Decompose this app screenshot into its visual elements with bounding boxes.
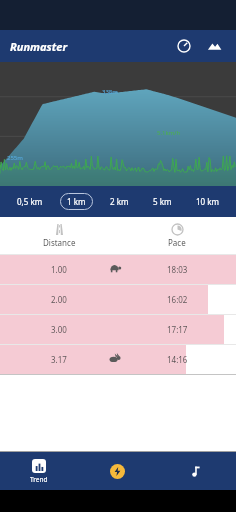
button[interactable]: 3.00 xyxy=(0,314,236,344)
staticText: 17:17 xyxy=(167,324,188,335)
button[interactable]: Music xyxy=(157,452,236,490)
button[interactable]: Distance xyxy=(0,224,118,248)
staticText: 3.00 xyxy=(51,324,67,335)
staticText: Pace xyxy=(168,237,186,248)
button[interactable]: Trend xyxy=(0,452,78,490)
staticText: 14:16 xyxy=(167,354,188,365)
button[interactable]: Elevation graph xyxy=(202,34,226,58)
button[interactable]: 2.00 xyxy=(0,284,236,314)
staticText: 10 km xyxy=(196,196,219,207)
staticText: 255m xyxy=(7,154,23,162)
staticText: 0,5 km xyxy=(17,196,43,207)
button[interactable]: Pace xyxy=(118,224,236,248)
button[interactable]: 3.17 xyxy=(0,344,236,374)
button[interactable]: 0,5 km xyxy=(10,193,50,210)
button[interactable]: 2 km xyxy=(103,193,136,210)
staticText: 5.1km/h xyxy=(157,129,181,137)
staticText: 338m xyxy=(102,88,118,96)
staticText: 5 km xyxy=(153,196,172,207)
button[interactable]: Start activity xyxy=(78,452,157,490)
button[interactable]: 1 km xyxy=(60,193,93,210)
staticText: 2.00 xyxy=(51,294,67,305)
staticText: 18:03 xyxy=(167,264,188,275)
button[interactable]: 5 km xyxy=(146,193,179,210)
staticText: Runmaster xyxy=(10,39,68,54)
button[interactable]: 10 km xyxy=(189,193,226,210)
staticText: 3.17 xyxy=(51,354,67,365)
staticText: 1.00 xyxy=(51,264,67,275)
staticText: Trend xyxy=(30,475,48,484)
staticText: 1 km xyxy=(67,196,86,207)
staticText: 2 km xyxy=(110,196,129,207)
button[interactable]: 1.00 xyxy=(0,254,236,284)
button[interactable]: Pace graph xyxy=(172,34,196,58)
staticText: 16:02 xyxy=(167,294,188,305)
staticText: Distance xyxy=(43,237,76,248)
